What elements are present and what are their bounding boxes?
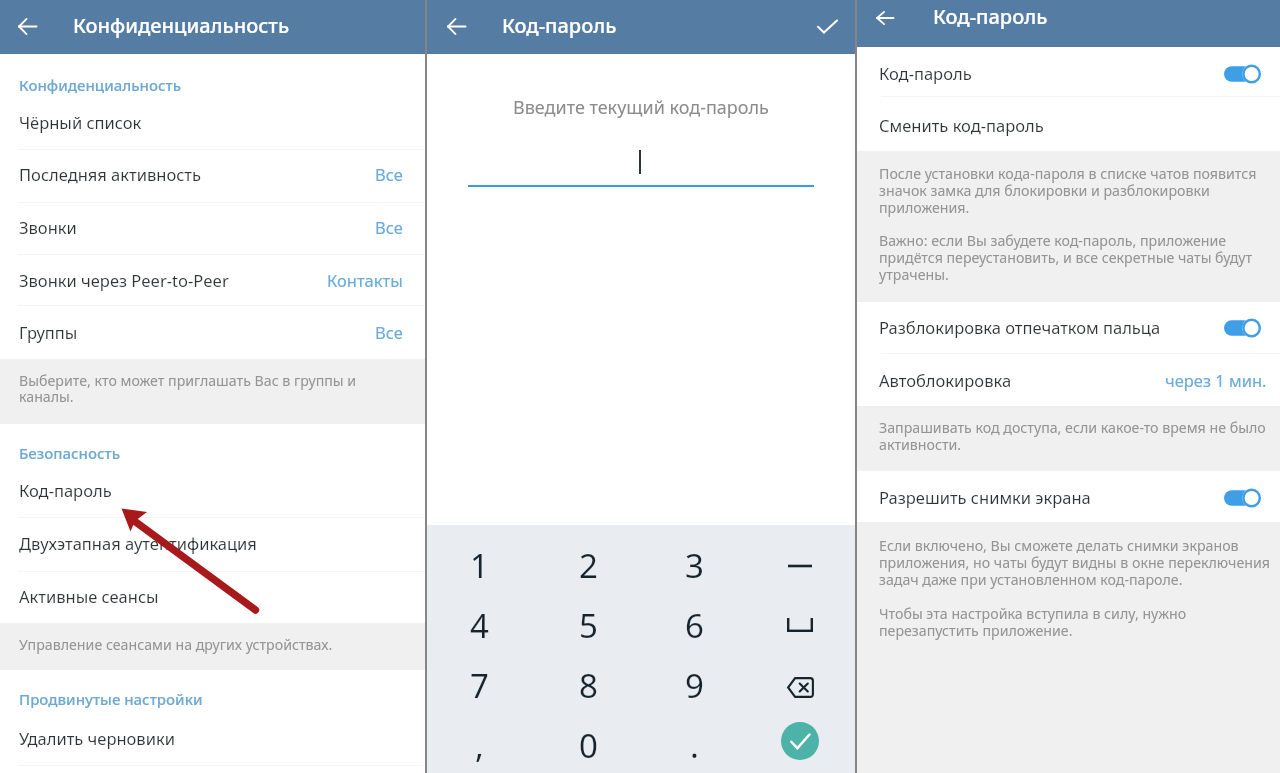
staticText: Звонки через Peer-to-Peer <box>19 269 229 291</box>
button[interactable]: Period <box>641 707 748 773</box>
button[interactable] <box>0 308 425 358</box>
button[interactable] <box>0 203 425 255</box>
button[interactable] <box>0 714 425 765</box>
staticText: утрачены. <box>879 265 949 284</box>
staticText: 1 <box>470 543 489 588</box>
staticText: Последняя активность <box>19 163 202 185</box>
button[interactable]: 1 <box>427 526 534 586</box>
button[interactable]: Back <box>436 6 476 46</box>
staticText: через 1 мин. <box>1165 369 1267 391</box>
button[interactable]: Enter <box>748 707 855 773</box>
staticText: Группы <box>19 321 78 343</box>
staticText: 3 <box>685 543 704 588</box>
staticText: Продвинутые настройки <box>19 689 203 709</box>
staticText: Выберите, кто может приглашать Вас в гру… <box>19 371 357 390</box>
staticText: 8 <box>579 663 598 708</box>
staticText: , <box>475 723 484 768</box>
staticText: Введите текущий код-пароль <box>513 95 769 120</box>
staticText: Двухэтапная аутентификация <box>19 532 257 554</box>
staticText: придётся переустановить, и все секретные… <box>879 248 1253 267</box>
button[interactable] <box>857 97 1280 150</box>
button[interactable]: 4 <box>427 586 534 646</box>
staticText: Код-пароль <box>502 12 617 39</box>
staticText: Активные сеансы <box>19 585 159 607</box>
staticText: Контакты <box>327 269 403 291</box>
button[interactable] <box>857 49 1280 96</box>
button[interactable]: Done <box>807 6 847 46</box>
button[interactable] <box>0 572 425 623</box>
button[interactable]: Backspace <box>748 646 855 707</box>
button[interactable] <box>0 518 425 571</box>
staticText: После установки кода-пароля в списке чат… <box>879 164 1257 183</box>
button[interactable]: 3 <box>641 526 748 586</box>
staticText: Чтобы эта настройка вступила в силу, нуж… <box>879 604 1187 623</box>
staticText: 0 <box>579 723 598 768</box>
button[interactable]: Comma <box>427 707 534 773</box>
button[interactable] <box>0 150 425 203</box>
staticText: . <box>690 723 699 768</box>
staticText: 7 <box>470 663 489 708</box>
button[interactable]: 5 <box>534 586 641 646</box>
staticText: приложения. <box>879 198 970 217</box>
button[interactable]: Space <box>748 586 855 646</box>
staticText: Важно: если Вы забудете код-пароль, прил… <box>879 231 1227 250</box>
staticText: Код-пароль <box>19 479 112 501</box>
staticText: 9 <box>685 663 704 708</box>
button[interactable]: Код-пароль <box>1213 57 1261 91</box>
button[interactable]: 6 <box>641 586 748 646</box>
staticText: Все <box>375 216 403 238</box>
button[interactable] <box>0 98 425 150</box>
staticText: Конфиденциальность <box>19 75 182 95</box>
staticText: Чёрный список <box>19 111 142 133</box>
button[interactable]: 0 <box>534 707 641 773</box>
button[interactable]: 7 <box>427 646 534 707</box>
button[interactable]: 8 <box>534 646 641 707</box>
button[interactable]: Back <box>7 6 47 46</box>
staticText: задач даже при установленном код-пароле. <box>879 570 1183 589</box>
button[interactable]: 9 <box>641 646 748 707</box>
staticText: Код-пароль <box>879 62 972 84</box>
staticText: 4 <box>470 603 489 648</box>
button[interactable]: Разрешить снимки экрана <box>1213 481 1261 515</box>
staticText: 5 <box>579 603 598 648</box>
staticText: активности. <box>879 435 962 454</box>
button[interactable]: Back <box>865 0 905 38</box>
staticText: 2 <box>579 543 598 588</box>
staticText: Безопасность <box>19 443 121 463</box>
staticText: Код-пароль <box>933 3 1048 30</box>
staticText: каналы. <box>19 387 74 406</box>
staticText: Разблокировка отпечатком пальца <box>879 316 1161 338</box>
staticText: Разрешить снимки экрана <box>879 486 1091 508</box>
button[interactable]: Разблокировка отпечатком пальца <box>1213 311 1261 345</box>
button[interactable] <box>0 255 425 307</box>
staticText: Автоблокировка <box>879 369 1012 391</box>
button[interactable]: Minus <box>748 526 855 586</box>
staticText: Если включено, Вы сможете делать снимки … <box>879 536 1239 555</box>
staticText: приложения, но чаты будут видны в окне п… <box>879 553 1270 572</box>
staticText: значок замка для блокировки и разблокиро… <box>879 181 1210 200</box>
button[interactable] <box>857 470 1280 520</box>
staticText: 6 <box>685 603 704 648</box>
staticText: Сменить код-пароль <box>879 114 1044 136</box>
staticText: Все <box>375 163 403 185</box>
staticText: Удалить черновики <box>19 727 175 749</box>
staticText: Все <box>375 321 403 343</box>
button[interactable]: 2 <box>534 526 641 586</box>
button[interactable] <box>857 354 1280 406</box>
staticText: Запрашивать код доступа, если какое-то в… <box>879 418 1266 437</box>
button[interactable] <box>0 467 425 518</box>
staticText: перезапустить приложение. <box>879 621 1073 640</box>
staticText: Управление сеансами на других устройства… <box>19 635 333 654</box>
staticText: Звонки <box>19 216 77 238</box>
staticText: Конфиденциальность <box>73 12 290 39</box>
button[interactable] <box>857 303 1280 353</box>
